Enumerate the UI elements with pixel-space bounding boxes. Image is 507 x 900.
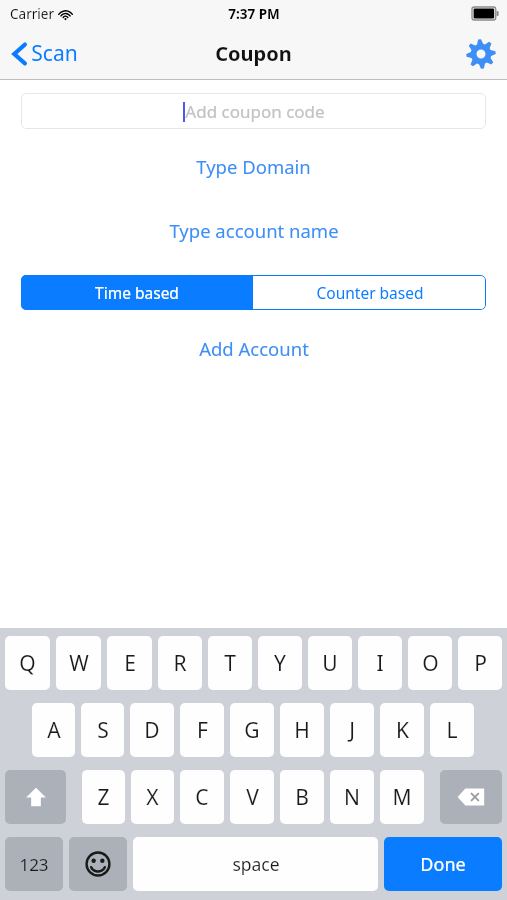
button[interactable]: E <box>107 636 152 690</box>
staticText: R <box>173 649 187 678</box>
staticText: Z <box>97 783 110 812</box>
staticText: V <box>246 783 259 812</box>
button[interactable]: T <box>208 636 252 690</box>
staticText: S <box>97 716 109 745</box>
button[interactable]: Add Account <box>0 335 507 361</box>
button[interactable]: I <box>358 636 402 690</box>
button[interactable]: Settings <box>454 27 507 80</box>
button[interactable]: R <box>158 636 202 690</box>
button[interactable]: S <box>81 703 124 757</box>
staticText: W <box>69 649 89 678</box>
button[interactable]: A <box>32 703 75 757</box>
staticText: 7:37 PM <box>228 5 280 23</box>
staticText: J <box>349 716 355 745</box>
staticText: Coupon <box>215 40 292 67</box>
button[interactable]: C <box>180 770 224 824</box>
button[interactable]: X <box>131 770 174 824</box>
staticText: H <box>294 716 310 745</box>
button[interactable]: space <box>133 837 378 891</box>
staticText: M <box>392 783 412 812</box>
button[interactable]: O <box>408 636 452 690</box>
button[interactable]: Type Domain <box>0 153 507 179</box>
staticText: P <box>474 649 487 678</box>
button[interactable]: Type account name <box>0 217 507 243</box>
button[interactable]: W <box>56 636 101 690</box>
button[interactable]: Add coupon code <box>21 93 486 129</box>
button[interactable]: Scan <box>0 27 88 80</box>
staticText: Add coupon code <box>185 100 325 123</box>
staticText: T <box>224 649 236 678</box>
button[interactable]: Q <box>5 636 50 690</box>
staticText: E <box>124 649 136 678</box>
button[interactable]: Counter based <box>253 275 486 310</box>
staticText: L <box>446 716 458 745</box>
staticText: F <box>197 716 208 745</box>
button[interactable]: Done <box>384 837 502 891</box>
button[interactable]: U <box>308 636 352 690</box>
staticText: Y <box>274 649 286 678</box>
button[interactable]: M <box>380 770 424 824</box>
button[interactable]: G <box>230 703 274 757</box>
button[interactable]: Y <box>258 636 302 690</box>
button[interactable]: K <box>380 703 424 757</box>
staticText: N <box>344 783 360 812</box>
staticText: U <box>322 649 338 678</box>
staticText: 123 <box>19 853 49 876</box>
staticText: Counter based <box>316 282 424 303</box>
button[interactable]: H <box>280 703 324 757</box>
button[interactable]: F <box>180 703 224 757</box>
staticText: Type Domain <box>196 154 311 179</box>
button[interactable]: Emoji <box>69 837 127 891</box>
staticText: D <box>144 716 160 745</box>
button[interactable]: Time based <box>21 275 253 310</box>
staticText: G <box>244 716 260 745</box>
button[interactable]: N <box>330 770 374 824</box>
staticText: C <box>195 783 209 812</box>
staticText: B <box>295 783 309 812</box>
staticText: K <box>396 716 409 745</box>
staticText: I <box>376 649 384 678</box>
button[interactable]: D <box>130 703 174 757</box>
button[interactable]: 123 <box>5 837 63 891</box>
staticText: Done <box>420 852 466 877</box>
button[interactable]: B <box>280 770 324 824</box>
staticText: space <box>232 852 280 876</box>
staticText: X <box>146 783 159 812</box>
button[interactable]: L <box>430 703 474 757</box>
staticText: Add Account <box>199 336 309 361</box>
staticText: Carrier <box>10 5 54 23</box>
staticText: A <box>47 716 61 745</box>
staticText: Time based <box>95 282 179 303</box>
button[interactable]: V <box>230 770 274 824</box>
staticText: Scan <box>31 39 78 68</box>
button[interactable]: P <box>458 636 502 690</box>
button[interactable]: Shift <box>5 770 66 824</box>
button[interactable]: Delete <box>440 770 502 824</box>
staticText: O <box>422 649 439 678</box>
button[interactable]: Z <box>82 770 125 824</box>
staticText: Q <box>19 649 36 678</box>
staticText: Type account name <box>169 218 339 243</box>
button[interactable]: J <box>330 703 374 757</box>
